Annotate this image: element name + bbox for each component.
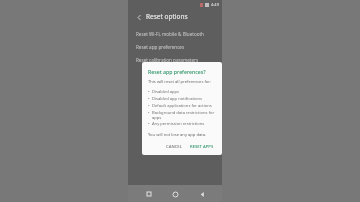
staticText: RESET APPS — [190, 144, 214, 150]
staticText: Disabled app notifications — [152, 96, 202, 102]
button[interactable]: CANCEL — [163, 142, 185, 152]
staticText: Disabled apps — [152, 89, 180, 95]
staticText: Any permission restrictions — [152, 121, 205, 127]
staticText: Default applications for actions — [152, 103, 212, 109]
staticText: Background data restrictions for apps — [152, 110, 217, 120]
staticText: Reset calibration parameters — [136, 57, 199, 63]
staticText: Reset app preferences? — [148, 68, 206, 75]
staticText: This will reset all preferences for: — [148, 79, 212, 85]
button[interactable]: Recents — [143, 188, 155, 200]
staticText: • — [148, 110, 150, 116]
staticText: Reset app preferences — [136, 44, 185, 50]
button[interactable]: Reset app preferences — [128, 40, 222, 53]
button[interactable]: Back — [196, 188, 208, 200]
staticText: Reset Wi-Fi, mobile & Bluetooth — [136, 31, 204, 37]
staticText: You will not lose any app data. — [148, 132, 207, 138]
staticText: Reset options — [146, 12, 188, 21]
button[interactable]: Home — [169, 188, 181, 200]
staticText: • — [148, 103, 150, 109]
button[interactable]: Reset Wi-Fi, mobile & Bluetooth — [128, 27, 222, 40]
staticText: 4:49 — [211, 2, 219, 7]
staticText: • — [148, 89, 150, 95]
button[interactable]: Back — [134, 12, 144, 22]
button[interactable]: Reset calibration parameters — [128, 53, 222, 66]
button[interactable]: RESET APPS — [187, 142, 217, 152]
staticText: • — [148, 96, 150, 102]
staticText: • — [148, 121, 150, 127]
staticText: CANCEL — [166, 144, 182, 150]
